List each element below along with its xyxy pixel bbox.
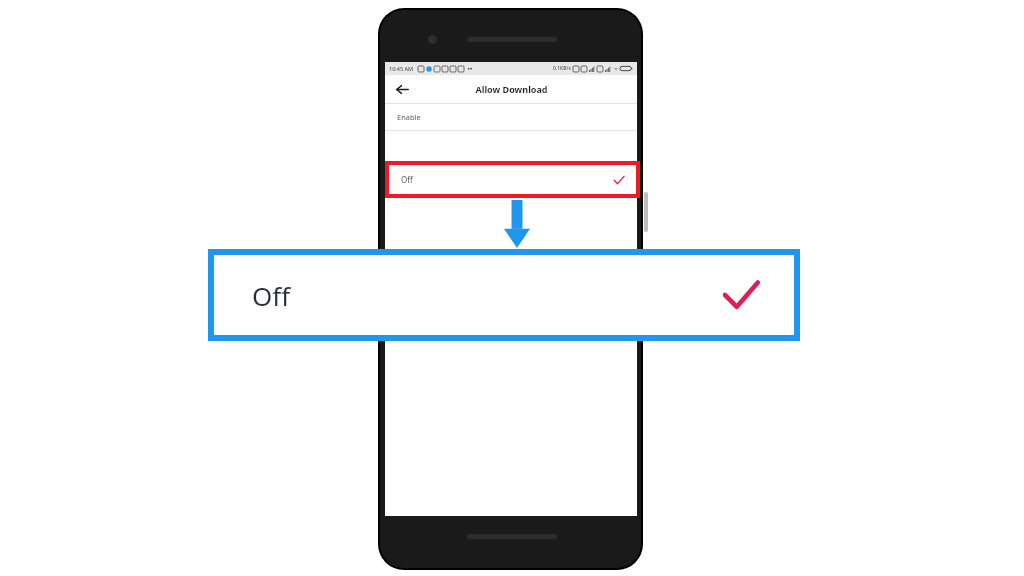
staticText: Off <box>401 174 413 185</box>
staticText: Enable <box>397 112 421 122</box>
button[interactable]: Off <box>389 165 636 194</box>
button[interactable]: Enable <box>385 104 637 130</box>
staticText: Off <box>252 278 291 313</box>
staticText: 10:45 AM <box>389 65 414 72</box>
staticText: 0.1KB/s <box>553 65 571 72</box>
button[interactable]: Off <box>214 255 794 335</box>
staticText: Allow Download <box>475 83 548 95</box>
button[interactable]: Back <box>391 78 413 100</box>
